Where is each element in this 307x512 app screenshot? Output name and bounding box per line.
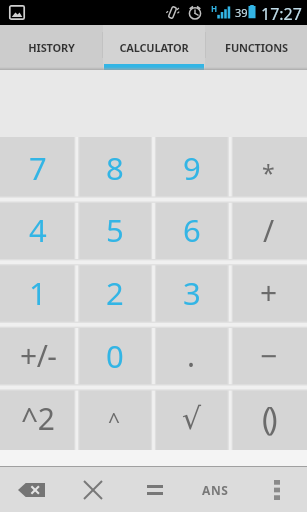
button[interactable]: Equals — [124, 467, 185, 512]
button[interactable]: ANS — [185, 467, 246, 512]
staticText: 6 — [183, 209, 201, 251]
staticText: 1 — [29, 272, 47, 314]
button[interactable]: 5 — [76, 199, 153, 261]
button[interactable]: Clear — [62, 467, 124, 512]
button[interactable]: √ — [153, 387, 230, 450]
button[interactable]: 3 — [153, 261, 230, 324]
staticText: CALCULATOR — [119, 40, 189, 55]
button[interactable]: 0 — [76, 324, 153, 387]
staticText: − — [260, 335, 278, 376]
staticText: √ — [182, 401, 202, 436]
staticText: ANS — [202, 482, 229, 498]
button[interactable]: 8 — [76, 137, 153, 199]
staticText: 3 — [183, 272, 201, 314]
staticText: . — [187, 335, 196, 376]
staticText: * — [262, 157, 275, 188]
button[interactable]: 4 — [0, 199, 76, 261]
staticText: HISTORY — [28, 40, 75, 55]
button[interactable]: 9 — [153, 137, 230, 199]
button[interactable]: More options — [246, 467, 307, 512]
button[interactable]: 1 — [0, 261, 76, 324]
staticText: H — [211, 3, 218, 14]
button[interactable]: 6 — [153, 199, 230, 261]
button[interactable]: . — [153, 324, 230, 387]
staticText: / — [263, 210, 275, 251]
staticText: + — [260, 272, 278, 313]
staticText: +/- — [20, 335, 57, 376]
staticText: 5 — [106, 209, 124, 251]
button[interactable]: ^2 — [0, 387, 76, 450]
staticText: 4 — [29, 209, 47, 251]
button[interactable]: CALCULATOR — [103, 25, 205, 70]
staticText: ^2 — [21, 398, 55, 439]
button[interactable]: ^ — [76, 387, 153, 450]
staticText: 2 — [106, 272, 124, 314]
button[interactable]: + — [230, 261, 307, 324]
button[interactable]: HISTORY — [0, 25, 103, 70]
button[interactable]: 7 — [0, 137, 76, 199]
button[interactable]: − — [230, 324, 307, 387]
staticText: 17:27 — [261, 3, 302, 25]
staticText: 7 — [29, 147, 47, 189]
button[interactable]: 2 — [76, 261, 153, 324]
staticText: () — [262, 397, 275, 441]
button[interactable]: +/- — [0, 324, 76, 387]
staticText: 39 — [235, 5, 248, 20]
button[interactable]: FUNCTIONS — [205, 25, 307, 70]
staticText: 8 — [106, 147, 124, 189]
staticText: 0 — [106, 335, 124, 377]
staticText: FUNCTIONS — [225, 40, 288, 55]
button[interactable]: () — [230, 387, 307, 450]
button[interactable]: Backspace — [0, 467, 62, 512]
button[interactable]: / — [230, 199, 307, 261]
staticText: ^ — [108, 407, 121, 436]
button[interactable]: * — [230, 137, 307, 199]
staticText: 9 — [183, 147, 201, 189]
